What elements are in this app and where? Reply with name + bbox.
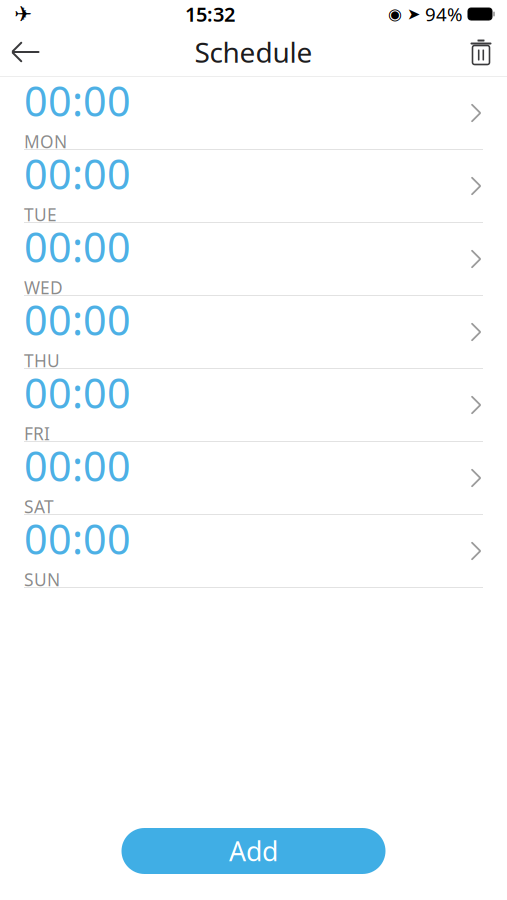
button[interactable]: Add (121, 828, 385, 874)
staticText: SAT (24, 495, 54, 518)
staticText: ✈ (14, 2, 32, 26)
staticText: 15:32 (185, 1, 235, 27)
button[interactable]: 00:00 (0, 369, 507, 442)
button[interactable]: 00:00 (0, 296, 507, 369)
button[interactable]: Delete all (455, 28, 507, 76)
button[interactable]: 00:00 (0, 442, 507, 515)
staticText: FRI (24, 422, 50, 445)
button[interactable]: 00:00 (0, 150, 507, 223)
button[interactable]: Back (0, 28, 52, 76)
staticText: 00:00 (24, 438, 131, 493)
button[interactable]: 00:00 (0, 515, 507, 588)
staticText: THU (24, 349, 60, 372)
staticText: Schedule (194, 33, 312, 71)
staticText: WED (24, 276, 63, 299)
staticText: 00:00 (24, 146, 131, 201)
staticText: SUN (24, 568, 60, 591)
staticText: ➤ (407, 5, 420, 23)
staticText: 00:00 (24, 73, 131, 128)
staticText: 00:00 (24, 511, 131, 566)
staticText: ◉ (388, 5, 402, 23)
staticText: 00:00 (24, 219, 131, 274)
button[interactable]: 00:00 (0, 77, 507, 150)
staticText: Add (229, 833, 278, 869)
staticText: 00:00 (24, 365, 131, 420)
staticText: 00:00 (24, 292, 131, 347)
staticText: MON (24, 130, 67, 153)
staticText: TUE (24, 203, 57, 226)
staticText: 94% (425, 2, 463, 26)
button[interactable]: 00:00 (0, 223, 507, 296)
